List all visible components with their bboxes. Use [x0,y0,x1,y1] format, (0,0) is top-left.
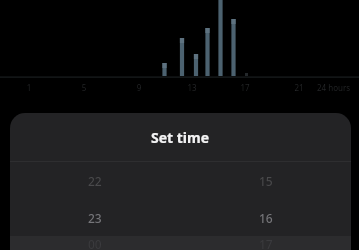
button[interactable]: 24 hour activity chart [0,0,359,100]
staticText: 5 [74,82,94,93]
staticText: 16 [259,210,273,226]
staticText: 1 [19,82,39,93]
staticText: 17 [259,236,273,250]
staticText: 24 hours [317,82,351,93]
staticText: 17 [235,82,255,93]
staticText: 13 [182,82,202,93]
button[interactable]: 23 [10,199,351,236]
staticText: 9 [129,82,149,93]
staticText: 22 [88,173,102,189]
staticText: 00 [88,236,102,250]
staticText: Set time [151,128,210,147]
staticText: 23 [88,210,102,226]
staticText: 21 [289,82,309,93]
staticText: 15 [259,173,273,189]
